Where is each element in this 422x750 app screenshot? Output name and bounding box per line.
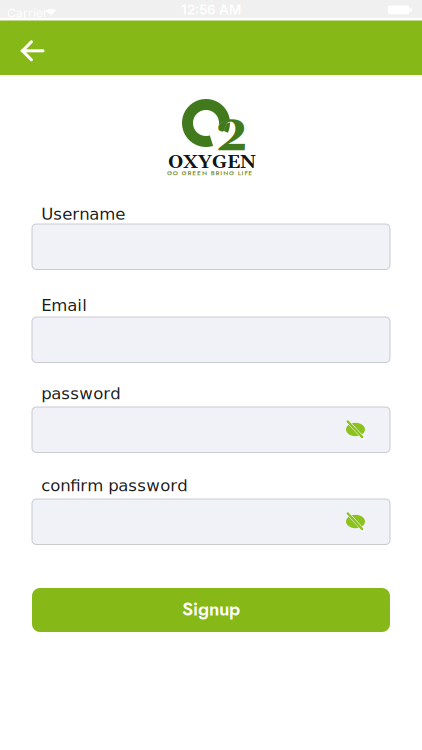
button[interactable]: confirm password [32, 499, 390, 544]
button[interactable]: password [32, 407, 390, 452]
button[interactable]: Username [32, 224, 390, 269]
staticText: R [187, 168, 191, 178]
button[interactable]: Show confirm password [344, 510, 366, 532]
staticText: E [192, 168, 196, 178]
staticText: G [167, 168, 172, 178]
staticText: G [229, 168, 234, 178]
staticText: G [182, 168, 187, 178]
staticText: Email [41, 296, 87, 315]
button[interactable]: Back [0, 20, 64, 75]
staticText: N [223, 168, 228, 178]
staticText: R [215, 168, 219, 178]
button[interactable]: Show password [344, 418, 366, 440]
staticText: B [211, 168, 215, 178]
staticText: E [248, 168, 252, 178]
staticText: N [202, 168, 207, 178]
staticText: 2 [215, 102, 248, 169]
staticText: E [197, 168, 201, 178]
button[interactable]: Signup [32, 588, 390, 632]
staticText: 12:56 AM [181, 1, 241, 18]
staticText: Username [41, 204, 125, 223]
staticText: O [173, 168, 178, 178]
staticText: L [238, 168, 241, 178]
staticText: F [244, 168, 247, 178]
staticText: Signup [182, 595, 240, 622]
staticText: password [41, 384, 120, 403]
staticText: Carrier [7, 6, 48, 20]
staticText: I [242, 168, 244, 178]
staticText: OXYGEN [168, 151, 256, 174]
staticText: 2 [215, 103, 247, 168]
staticText: I [220, 168, 222, 178]
button[interactable]: Email [32, 317, 390, 362]
staticText: confirm password [41, 476, 187, 495]
